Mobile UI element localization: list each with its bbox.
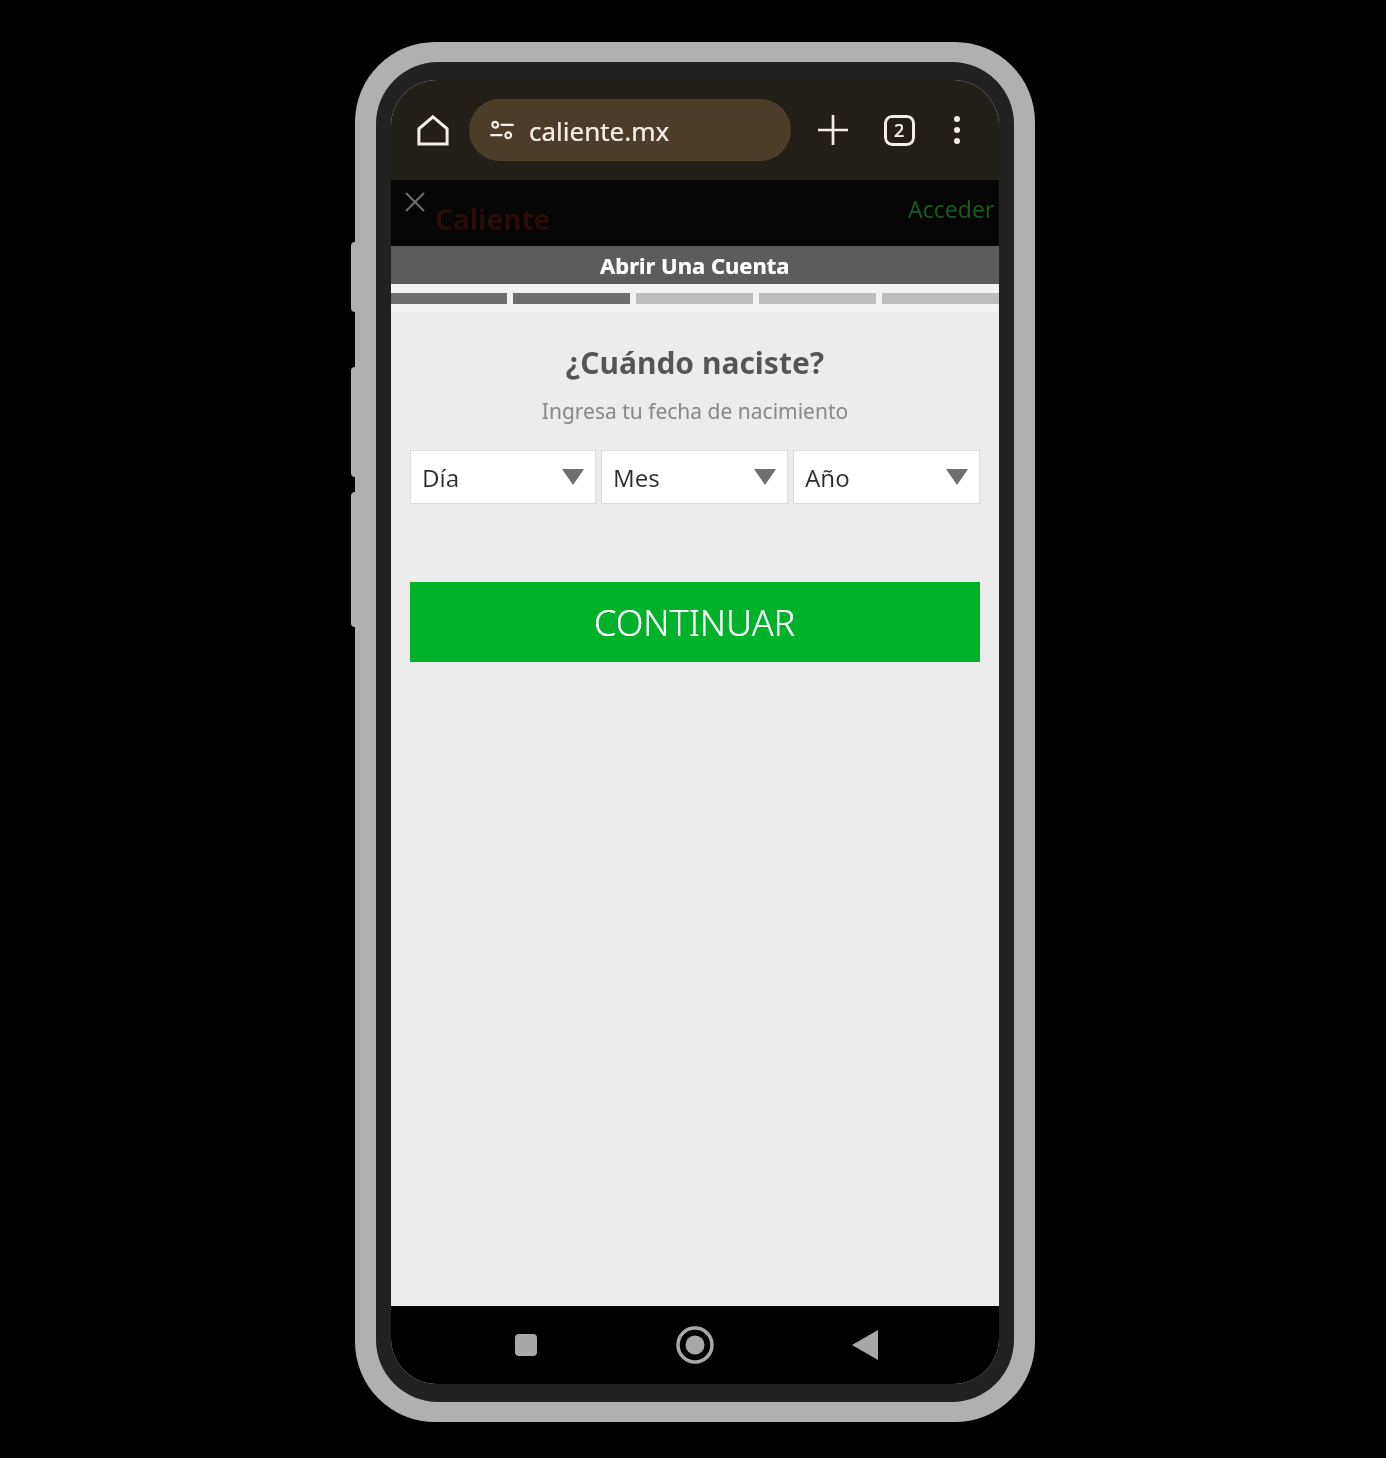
button[interactable]: Tabs, 2 open: [873, 104, 925, 156]
button[interactable]: Home: [660, 1310, 730, 1380]
staticText: Día: [422, 461, 460, 494]
button[interactable]: Día: [410, 450, 596, 504]
staticText: Ingresa tu fecha de nacimiento: [391, 397, 999, 426]
staticText: Abrir Una Cuenta: [600, 250, 790, 280]
button[interactable]: Home: [407, 104, 459, 156]
staticText: Año: [805, 461, 850, 494]
staticText: Caliente: [435, 200, 551, 238]
button[interactable]: Close ad: [397, 184, 433, 220]
button[interactable]: More options: [933, 106, 981, 154]
button[interactable]: caliente.mx: [469, 99, 791, 161]
staticText: ¿Cuándo naciste?: [391, 342, 999, 383]
staticText: 2: [894, 118, 905, 143]
button[interactable]: Año: [793, 450, 980, 504]
button[interactable]: Acceder: [908, 193, 995, 224]
button[interactable]: Recent apps: [491, 1310, 561, 1380]
staticText: Mes: [613, 461, 660, 494]
staticText: CONTINUAR: [594, 598, 796, 647]
button[interactable]: Back: [830, 1310, 900, 1380]
button[interactable]: Mes: [601, 450, 788, 504]
button[interactable]: New tab: [807, 104, 859, 156]
staticText: caliente.mx: [529, 113, 670, 148]
button[interactable]: CONTINUAR: [410, 582, 980, 662]
